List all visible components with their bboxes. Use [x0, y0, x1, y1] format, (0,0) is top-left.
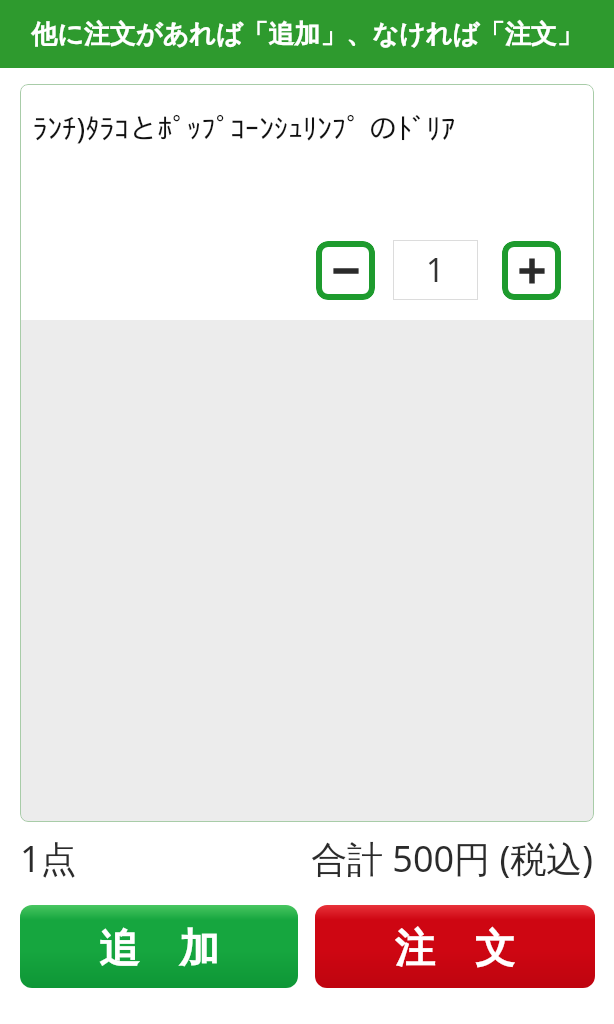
button[interactable]: 追 加 — [20, 905, 298, 988]
staticText: 合計 500円 (税込) — [311, 834, 594, 883]
staticText: ﾗﾝﾁ)ﾀﾗｺとﾎﾟｯﾌﾟｺｰﾝｼｭﾘﾝﾌﾟ のﾄﾞﾘｱ — [33, 108, 456, 147]
staticText: 1 — [426, 248, 445, 292]
staticText: 追 加 — [99, 919, 219, 974]
button[interactable]: Decrease quantity — [316, 241, 375, 300]
staticText: 他に注文があれば「追加」、なければ「注文」 — [31, 18, 583, 51]
staticText: 1点 — [20, 834, 77, 883]
button[interactable]: 注 文 — [315, 905, 595, 988]
staticText: 注 文 — [395, 919, 515, 974]
button[interactable]: Increase quantity — [502, 241, 561, 300]
